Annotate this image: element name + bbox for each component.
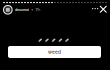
staticText: deuxmoi [15,8,29,12]
staticText: weed [48,49,61,55]
staticText: 17h [35,8,40,12]
